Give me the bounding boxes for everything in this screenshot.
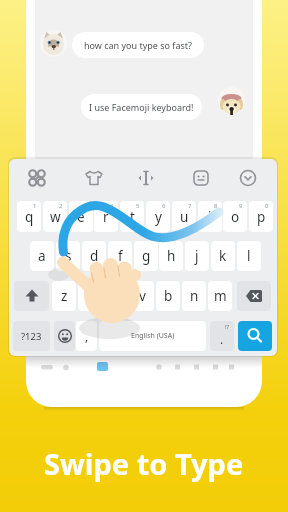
staticText: i xyxy=(208,208,212,226)
button[interactable]: h xyxy=(159,241,183,271)
button[interactable]: k xyxy=(211,241,235,271)
button[interactable]: b xyxy=(156,281,180,311)
button[interactable] xyxy=(238,321,272,351)
staticText: 6 xyxy=(162,202,166,210)
button[interactable]: r xyxy=(94,201,118,232)
staticText: q xyxy=(25,208,34,226)
staticText: 2 xyxy=(59,202,63,210)
staticText: e xyxy=(77,208,85,226)
staticText: z xyxy=(61,287,68,305)
staticText: p xyxy=(257,208,266,226)
button[interactable]: i xyxy=(198,201,222,232)
button[interactable] xyxy=(134,166,158,190)
button[interactable]: x xyxy=(78,281,102,311)
button[interactable]: t xyxy=(120,201,144,232)
staticText: !? xyxy=(225,323,230,331)
staticText: h xyxy=(167,247,176,265)
button[interactable]: e xyxy=(69,201,93,232)
staticText: r xyxy=(103,208,109,226)
staticText: 7 xyxy=(188,202,192,210)
button[interactable]: u xyxy=(172,201,196,232)
staticText: d xyxy=(90,247,99,265)
button[interactable]: j xyxy=(185,241,209,271)
staticText: 3 xyxy=(85,202,89,210)
staticText: j xyxy=(195,247,199,265)
staticText: o xyxy=(231,208,240,226)
staticText: f xyxy=(118,247,123,265)
staticText: a xyxy=(38,247,46,265)
button[interactable]: . xyxy=(210,321,234,351)
button[interactable]: m xyxy=(208,281,232,311)
button[interactable] xyxy=(82,166,106,190)
button[interactable] xyxy=(236,166,260,190)
button[interactable]: y xyxy=(146,201,170,232)
staticText: m xyxy=(214,287,227,305)
staticText: how can you type so fast? xyxy=(84,39,192,51)
staticText: b xyxy=(164,287,173,305)
button[interactable]: w xyxy=(43,201,67,232)
button[interactable]: d xyxy=(82,241,106,271)
staticText: k xyxy=(219,247,227,265)
staticText: t xyxy=(130,208,135,226)
staticText: 8 xyxy=(214,202,218,210)
staticText: l xyxy=(247,247,251,265)
button[interactable]: l xyxy=(237,241,261,271)
staticText: 1 xyxy=(33,202,37,210)
staticText: I use Facemoji keyboard! xyxy=(89,101,194,113)
staticText: y xyxy=(155,208,162,226)
button[interactable] xyxy=(54,321,75,351)
button[interactable]: s xyxy=(56,241,80,271)
button[interactable]: g xyxy=(134,241,158,271)
button[interactable] xyxy=(237,281,271,311)
staticText: u xyxy=(180,208,189,226)
staticText: w xyxy=(50,208,61,226)
staticText: English (USA) xyxy=(131,331,175,341)
staticText: ?123 xyxy=(21,330,42,343)
button[interactable]: o xyxy=(223,201,247,232)
staticText: s xyxy=(65,247,72,265)
button[interactable]: f xyxy=(108,241,132,271)
button[interactable]: I use Facemoji keyboard! xyxy=(81,94,202,120)
button[interactable]: n xyxy=(182,281,206,311)
button[interactable] xyxy=(14,281,49,311)
button[interactable]: how can you type so fast? xyxy=(72,32,204,58)
staticText: . xyxy=(220,331,224,347)
staticText: 4 xyxy=(110,202,114,210)
button[interactable]: ?123 xyxy=(13,321,50,351)
button[interactable]: , xyxy=(76,321,97,351)
button[interactable] xyxy=(189,166,213,190)
staticText: g xyxy=(142,247,151,265)
button[interactable]: z xyxy=(52,281,76,311)
button[interactable]: p xyxy=(249,201,273,232)
staticText: v xyxy=(139,287,146,305)
staticText: , xyxy=(85,328,89,344)
button[interactable]: English (USA) xyxy=(99,321,206,351)
button[interactable]: a xyxy=(30,241,54,271)
staticText: n xyxy=(190,287,199,305)
staticText: 0 xyxy=(265,202,269,210)
button[interactable] xyxy=(25,166,49,190)
staticText: 9 xyxy=(239,202,243,210)
staticText: 5 xyxy=(136,202,140,210)
staticText: Swipe to Type xyxy=(44,444,244,483)
button[interactable]: v xyxy=(130,281,154,311)
button[interactable]: q xyxy=(17,201,41,232)
